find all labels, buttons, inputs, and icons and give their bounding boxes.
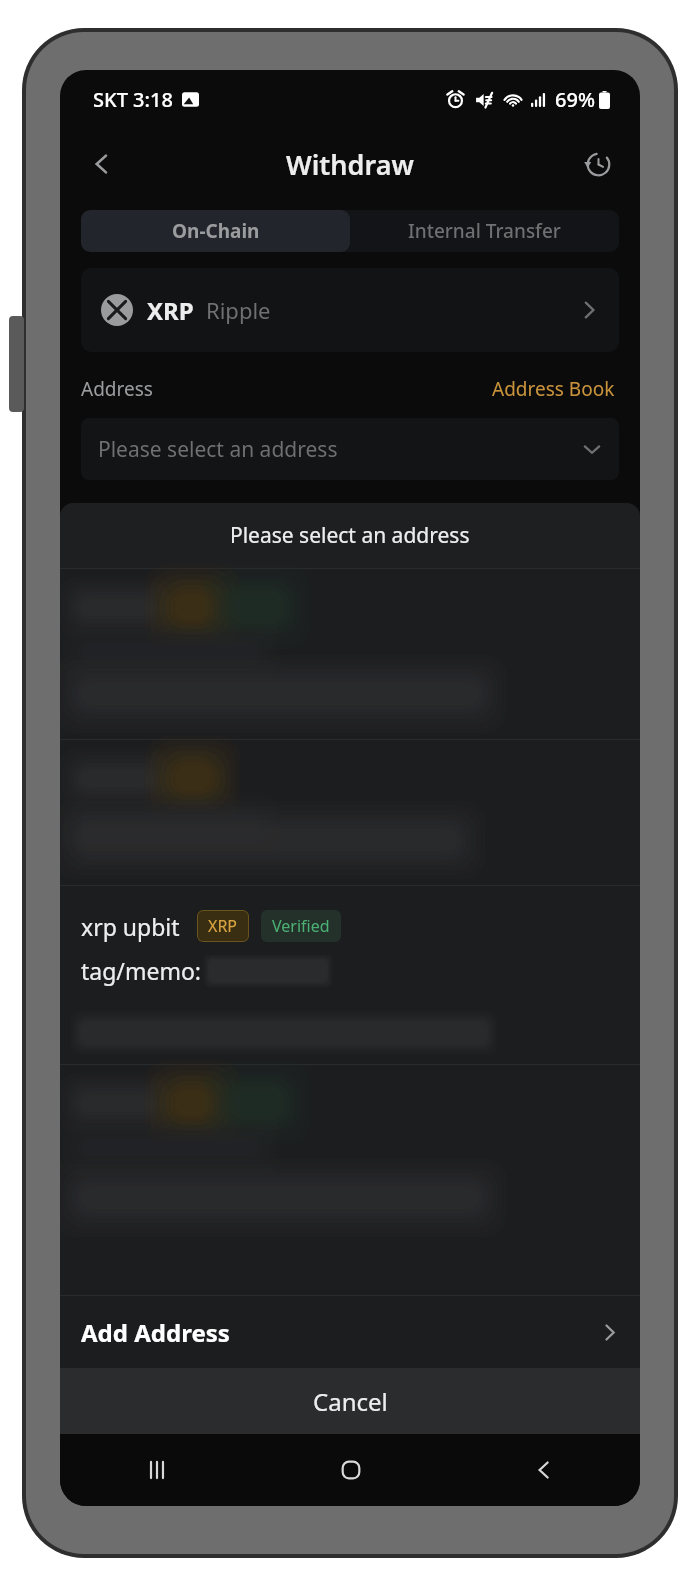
button[interactable]: Cancel bbox=[60, 1368, 640, 1434]
staticText: Add Address bbox=[81, 1316, 230, 1349]
button[interactable] bbox=[60, 740, 640, 885]
button[interactable]: History bbox=[574, 140, 622, 188]
staticText: 69% bbox=[555, 86, 595, 113]
button[interactable] bbox=[60, 1065, 640, 1243]
staticText: On-Chain bbox=[172, 218, 260, 244]
staticText: XRP bbox=[147, 294, 194, 327]
button[interactable]: Please select an address bbox=[81, 418, 619, 480]
button[interactable]: Home bbox=[254, 1434, 447, 1506]
staticText: Address Book bbox=[492, 376, 615, 402]
button[interactable]: XRP bbox=[81, 268, 619, 352]
button[interactable] bbox=[60, 569, 640, 739]
button[interactable]: Back bbox=[78, 140, 126, 188]
button[interactable]: Internal Transfer bbox=[350, 210, 619, 252]
button[interactable]: xrp upbit bbox=[60, 886, 640, 1064]
button[interactable]: Address Book bbox=[488, 372, 619, 406]
staticText: Ripple bbox=[206, 295, 271, 325]
staticText: Please select an address bbox=[98, 435, 338, 464]
staticText: Please select an address bbox=[230, 521, 470, 550]
button[interactable]: On-Chain bbox=[81, 210, 350, 252]
staticText: Address bbox=[81, 376, 153, 402]
staticText: XRP bbox=[208, 915, 238, 937]
staticText: xrp upbit bbox=[81, 911, 180, 942]
staticText: SKT 3:18 bbox=[93, 86, 173, 113]
staticText: Verified bbox=[272, 915, 330, 937]
button[interactable]: Recent apps bbox=[60, 1434, 254, 1506]
staticText: Internal Transfer bbox=[408, 218, 561, 244]
button[interactable]: Back bbox=[447, 1434, 640, 1506]
staticText: tag/memo: bbox=[81, 955, 201, 986]
staticText: Withdraw bbox=[286, 146, 414, 183]
staticText: Cancel bbox=[313, 1385, 388, 1418]
button[interactable]: Add Address bbox=[60, 1296, 640, 1368]
